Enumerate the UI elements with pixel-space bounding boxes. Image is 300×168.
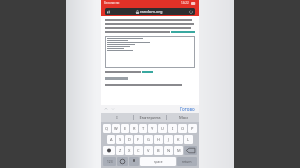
staticText: S	[119, 137, 122, 142]
staticText: D	[128, 137, 131, 142]
staticText: M	[177, 148, 181, 153]
button[interactable]: E	[121, 124, 129, 133]
button[interactable]: J	[164, 135, 173, 144]
staticText: space	[154, 160, 163, 164]
button[interactable]: return	[177, 157, 197, 166]
staticText: B	[157, 148, 160, 153]
button[interactable]: Z	[116, 146, 124, 155]
button[interactable]: Page settings	[105, 8, 195, 15]
staticText: random.org	[140, 9, 163, 14]
staticText: F	[137, 137, 140, 142]
staticText: P	[191, 126, 194, 131]
button[interactable]: Екатерина	[134, 113, 166, 122]
staticText: K	[177, 137, 180, 142]
button[interactable]: I	[101, 113, 133, 122]
button[interactable]: Shift	[103, 146, 115, 155]
button[interactable]: R	[130, 124, 138, 133]
button[interactable]: Previous field	[104, 107, 108, 111]
staticText: U	[161, 126, 164, 131]
button[interactable]: Мои	[167, 113, 199, 122]
staticText: Z	[119, 148, 122, 153]
button[interactable]: Next field	[111, 107, 115, 111]
button[interactable]: space	[140, 157, 176, 166]
staticText: A	[110, 137, 113, 142]
staticText: Q	[105, 126, 109, 131]
staticText: Готово	[180, 106, 195, 112]
staticText: G	[147, 137, 150, 142]
staticText: X	[128, 148, 131, 153]
staticText: R	[133, 126, 136, 131]
button[interactable]: P	[188, 124, 197, 133]
button[interactable]: F	[134, 135, 143, 144]
button[interactable]: Emoji	[117, 157, 128, 166]
button[interactable]	[105, 36, 195, 68]
other: Page settings	[107, 10, 111, 14]
button[interactable]: Y	[148, 124, 157, 133]
staticText: J	[168, 137, 170, 142]
button[interactable]: Готово	[179, 105, 196, 113]
staticText: Екатерина	[139, 115, 161, 121]
button[interactable]: B	[154, 146, 163, 155]
button[interactable]: U	[158, 124, 167, 133]
button[interactable]: H	[154, 135, 163, 144]
button[interactable]: 123	[103, 157, 116, 166]
staticText: C	[137, 148, 140, 153]
button[interactable]: Backspace	[184, 146, 197, 155]
button[interactable]: X	[125, 146, 133, 155]
button[interactable]: N	[164, 146, 173, 155]
staticText: I	[116, 115, 118, 121]
staticText: return	[182, 160, 192, 164]
button[interactable]: G	[144, 135, 153, 144]
button[interactable]: L	[184, 135, 193, 144]
staticText: E	[124, 126, 127, 131]
staticText: L	[187, 137, 190, 142]
staticText: T	[142, 126, 145, 131]
button[interactable]: I	[168, 124, 177, 133]
other: Reload	[189, 10, 193, 14]
staticText: N	[167, 148, 171, 153]
staticText: 14:22	[181, 1, 189, 5]
button[interactable]: A	[107, 135, 115, 144]
staticText: O	[181, 126, 185, 131]
staticText: H	[157, 137, 160, 142]
button[interactable]: C	[134, 146, 143, 155]
staticText: Y	[151, 126, 154, 131]
button[interactable]: O	[178, 124, 187, 133]
button[interactable]: V	[144, 146, 153, 155]
button[interactable]: D	[125, 135, 133, 144]
staticText: W	[114, 126, 118, 131]
button[interactable]: K	[174, 135, 183, 144]
button[interactable]: S	[116, 135, 124, 144]
staticText: I	[172, 126, 174, 131]
button[interactable]: T	[139, 124, 147, 133]
button[interactable]: Q	[103, 124, 111, 133]
button[interactable]: M	[174, 146, 183, 155]
staticText: 123	[107, 160, 113, 164]
staticText: Мои	[179, 115, 188, 121]
button[interactable]: Dictation	[129, 157, 139, 166]
staticText: V	[147, 148, 150, 153]
staticText: Безопасно	[104, 1, 120, 5]
button[interactable]: W	[112, 124, 120, 133]
